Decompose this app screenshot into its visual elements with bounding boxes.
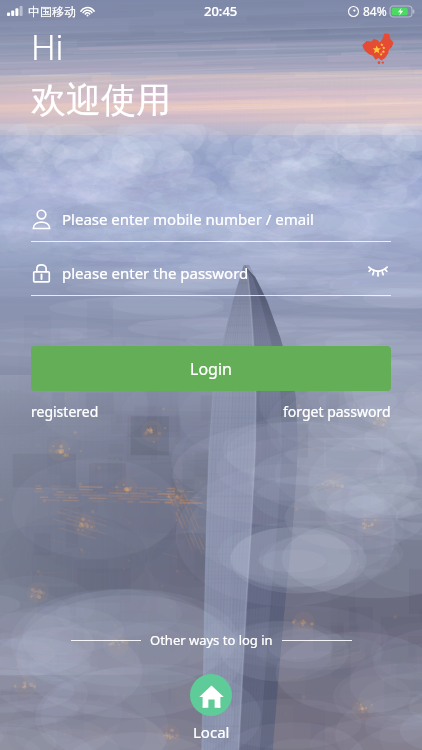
other: Region — [360, 30, 398, 68]
staticText: registered — [31, 402, 99, 421]
button[interactable]: Login — [31, 346, 391, 391]
staticText: Hi — [31, 24, 64, 70]
staticText: please enter the password — [62, 263, 249, 283]
staticText: 中国移动 — [28, 4, 76, 19]
staticText: Other ways to log in — [150, 631, 273, 649]
button[interactable]: forget password — [283, 402, 391, 421]
staticText: 欢迎使用 — [31, 78, 171, 122]
button[interactable]: registered — [31, 402, 99, 421]
staticText: 84% — [363, 3, 387, 19]
staticText: Please enter mobile number / email — [62, 209, 314, 229]
staticText: forget password — [283, 402, 391, 421]
staticText: Local — [193, 722, 230, 742]
staticText: 20:45 — [204, 2, 238, 20]
button[interactable]: Show password — [365, 258, 391, 284]
staticText: Login — [190, 358, 232, 380]
button[interactable]: Local — [0, 674, 422, 742]
